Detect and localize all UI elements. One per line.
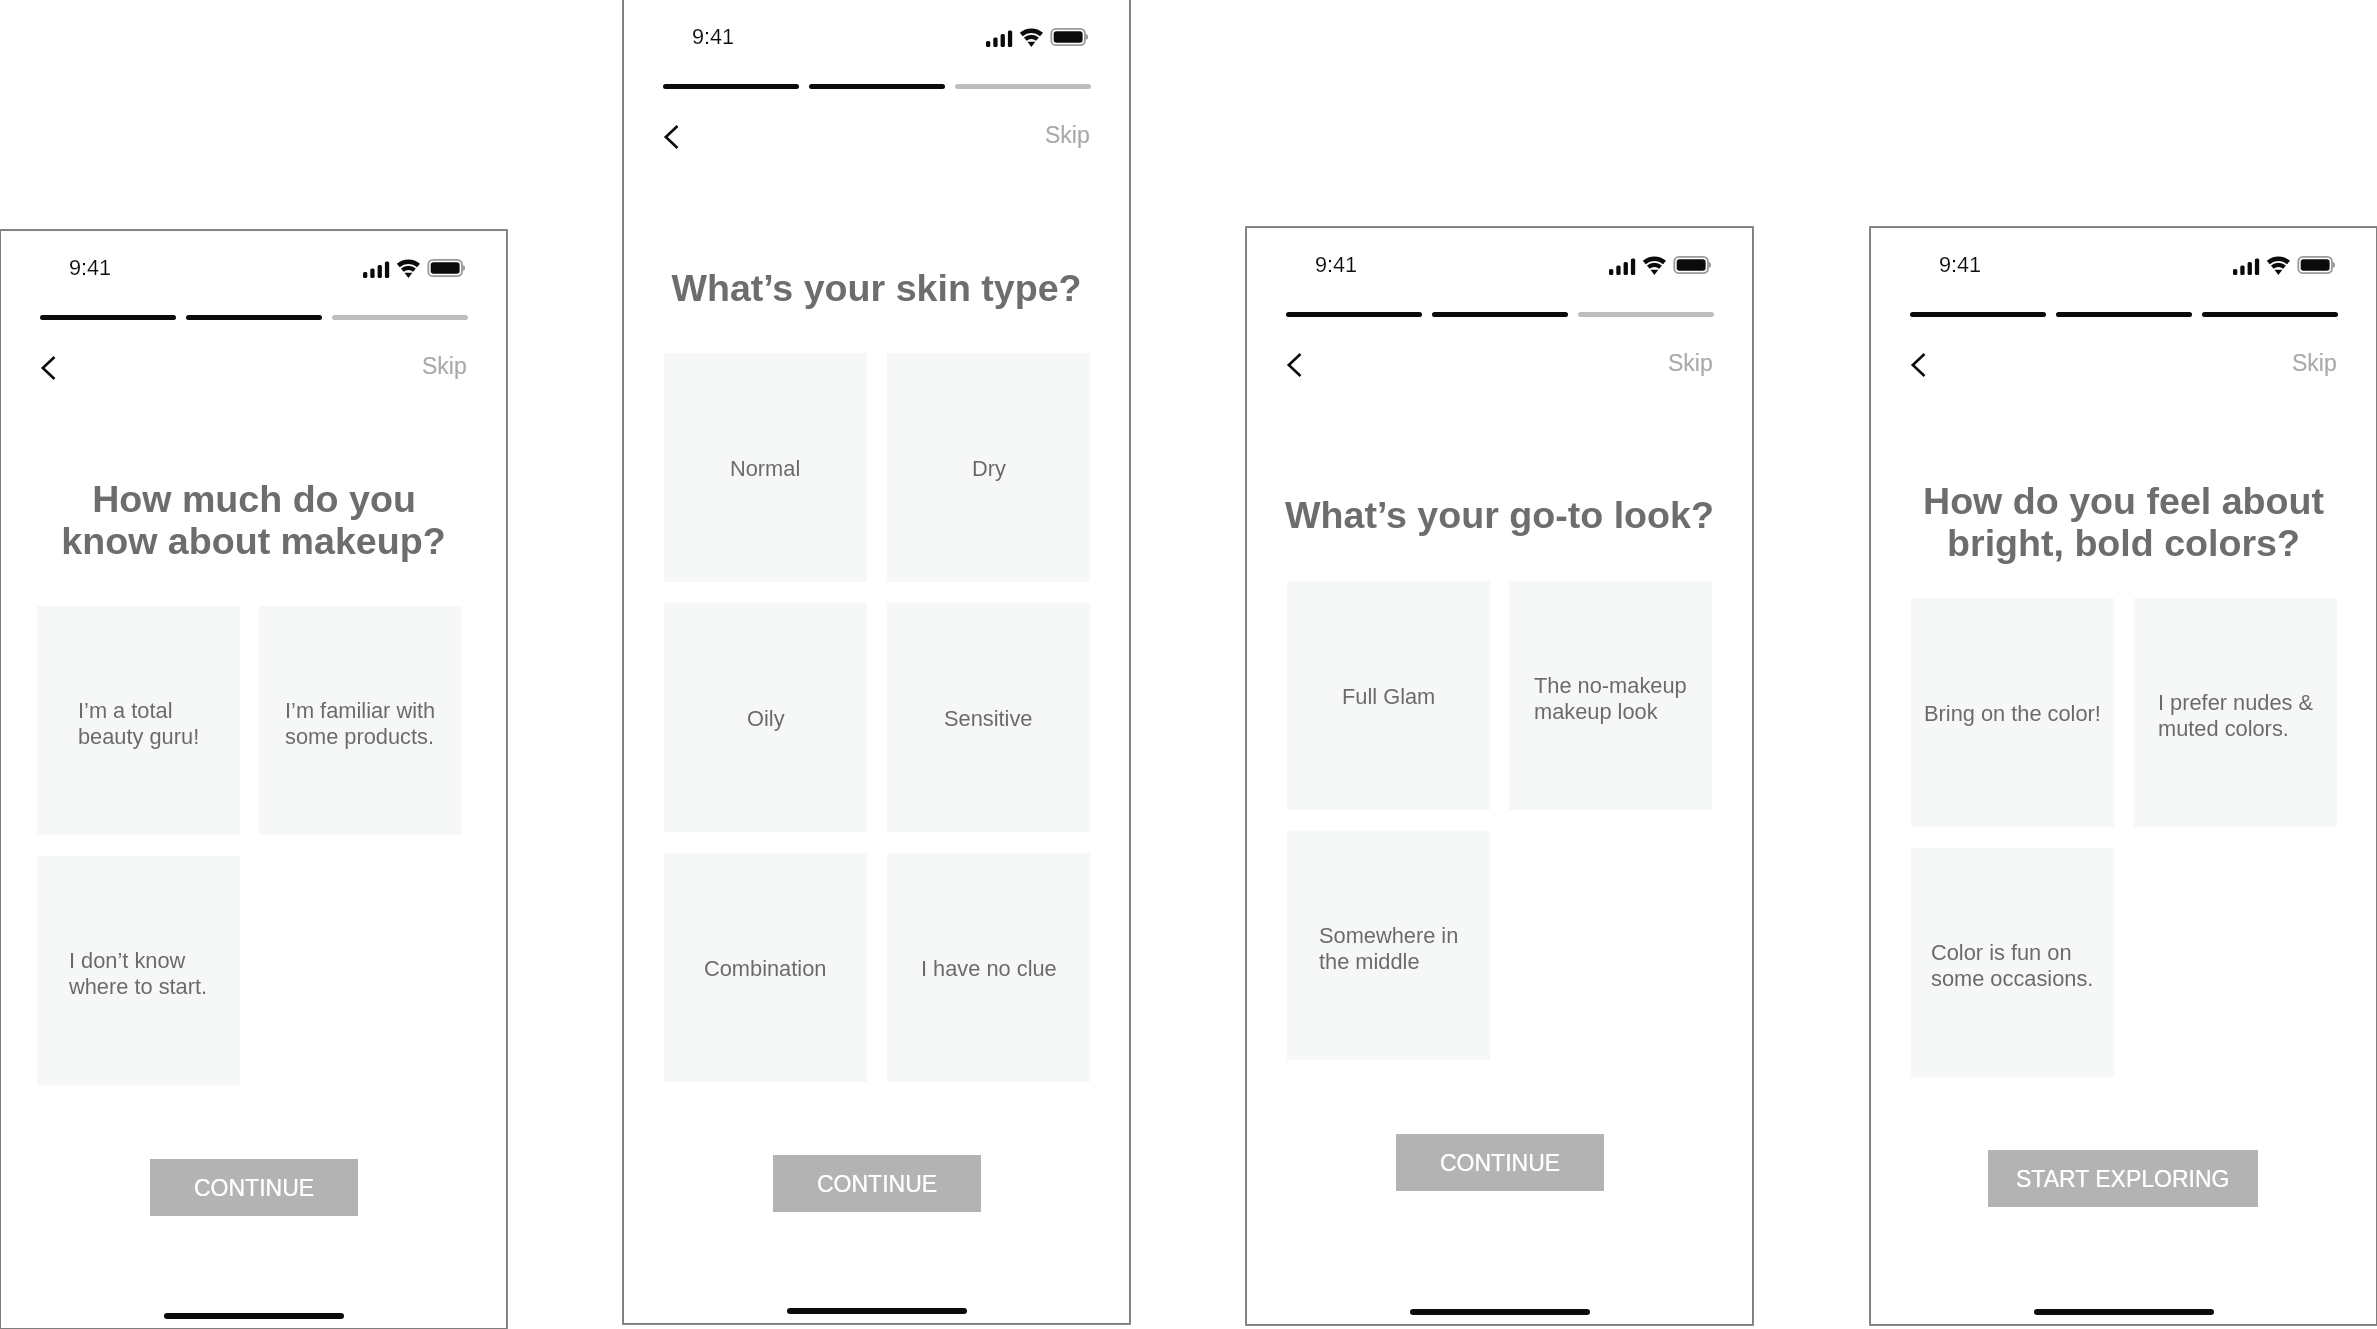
button[interactable]: Color is fun on some occasions. xyxy=(1911,848,2114,1077)
button[interactable]: Skip xyxy=(397,347,467,385)
button[interactable]: I prefer nudes & muted colors. xyxy=(2134,598,2337,827)
staticText: CONTINUE xyxy=(1440,1150,1561,1176)
button[interactable]: Combination xyxy=(664,853,867,1082)
staticText: Skip xyxy=(422,353,467,379)
staticText: I don’t know where to start. xyxy=(69,948,208,998)
staticText: I prefer nudes & muted colors. xyxy=(2158,690,2314,740)
button[interactable]: Back xyxy=(650,120,684,154)
staticText: 9:41 xyxy=(692,24,735,48)
button[interactable]: Skip xyxy=(1643,344,1713,382)
staticText: Combination xyxy=(704,956,827,980)
button[interactable]: Skip xyxy=(2267,344,2337,382)
button[interactable]: Dry xyxy=(887,353,1090,582)
button[interactable]: Sensitive xyxy=(887,603,1090,832)
staticText: What’s your go-to look? xyxy=(1285,494,1714,536)
staticText: Skip xyxy=(1045,122,1090,148)
staticText: The no-makeup makeup look xyxy=(1534,673,1687,723)
staticText: Dry xyxy=(972,456,1006,480)
staticText: Skip xyxy=(2292,350,2337,376)
staticText: Somewhere in the middle xyxy=(1319,923,1459,973)
button[interactable]: Back xyxy=(1273,348,1307,382)
button[interactable]: Back xyxy=(1897,348,1931,382)
staticText: What’s your skin type? xyxy=(671,267,1082,309)
staticText: How much do you xyxy=(92,478,416,520)
button[interactable]: I don’t know where to start. xyxy=(37,856,240,1085)
staticText: I’m familiar with some products. xyxy=(285,698,436,748)
staticText: Bring on the color! xyxy=(1924,701,2101,725)
staticText: How do you feel about xyxy=(1923,480,2324,522)
button[interactable]: The no-makeup makeup look xyxy=(1509,581,1712,810)
staticText: Skip xyxy=(1668,350,1713,376)
staticText: CONTINUE xyxy=(194,1175,315,1201)
staticText: Full Glam xyxy=(1342,684,1436,708)
staticText: 9:41 xyxy=(69,255,112,279)
staticText: I have no clue xyxy=(921,956,1057,980)
button[interactable]: I have no clue xyxy=(887,853,1090,1082)
button[interactable]: Back xyxy=(27,351,61,385)
button[interactable]: CONTINUE xyxy=(150,1159,358,1216)
button[interactable]: Bring on the color! xyxy=(1911,598,2114,827)
staticText: Color is fun on some occasions. xyxy=(1931,940,2094,990)
button[interactable]: START EXPLORING xyxy=(1988,1150,2258,1207)
button[interactable]: I’m familiar with some products. xyxy=(259,606,462,835)
staticText: 9:41 xyxy=(1315,252,1358,276)
staticText: Oily xyxy=(747,706,785,730)
button[interactable]: Normal xyxy=(664,353,867,582)
staticText: I’m a total beauty guru! xyxy=(78,698,200,748)
button[interactable]: I’m a total beauty guru! xyxy=(37,606,240,835)
staticText: 9:41 xyxy=(1939,252,1982,276)
staticText: Normal xyxy=(730,456,801,480)
button[interactable]: Oily xyxy=(664,603,867,832)
button[interactable]: CONTINUE xyxy=(773,1155,981,1212)
staticText: Sensitive xyxy=(944,706,1033,730)
button[interactable]: Somewhere in the middle xyxy=(1287,831,1490,1060)
staticText: know about makeup? xyxy=(61,520,446,562)
staticText: START EXPLORING xyxy=(2016,1166,2230,1192)
button[interactable]: Full Glam xyxy=(1287,581,1490,810)
staticText: bright, bold colors? xyxy=(1947,522,2300,564)
button[interactable]: Skip xyxy=(1020,116,1090,154)
staticText: CONTINUE xyxy=(817,1171,938,1197)
button[interactable]: CONTINUE xyxy=(1396,1134,1604,1191)
